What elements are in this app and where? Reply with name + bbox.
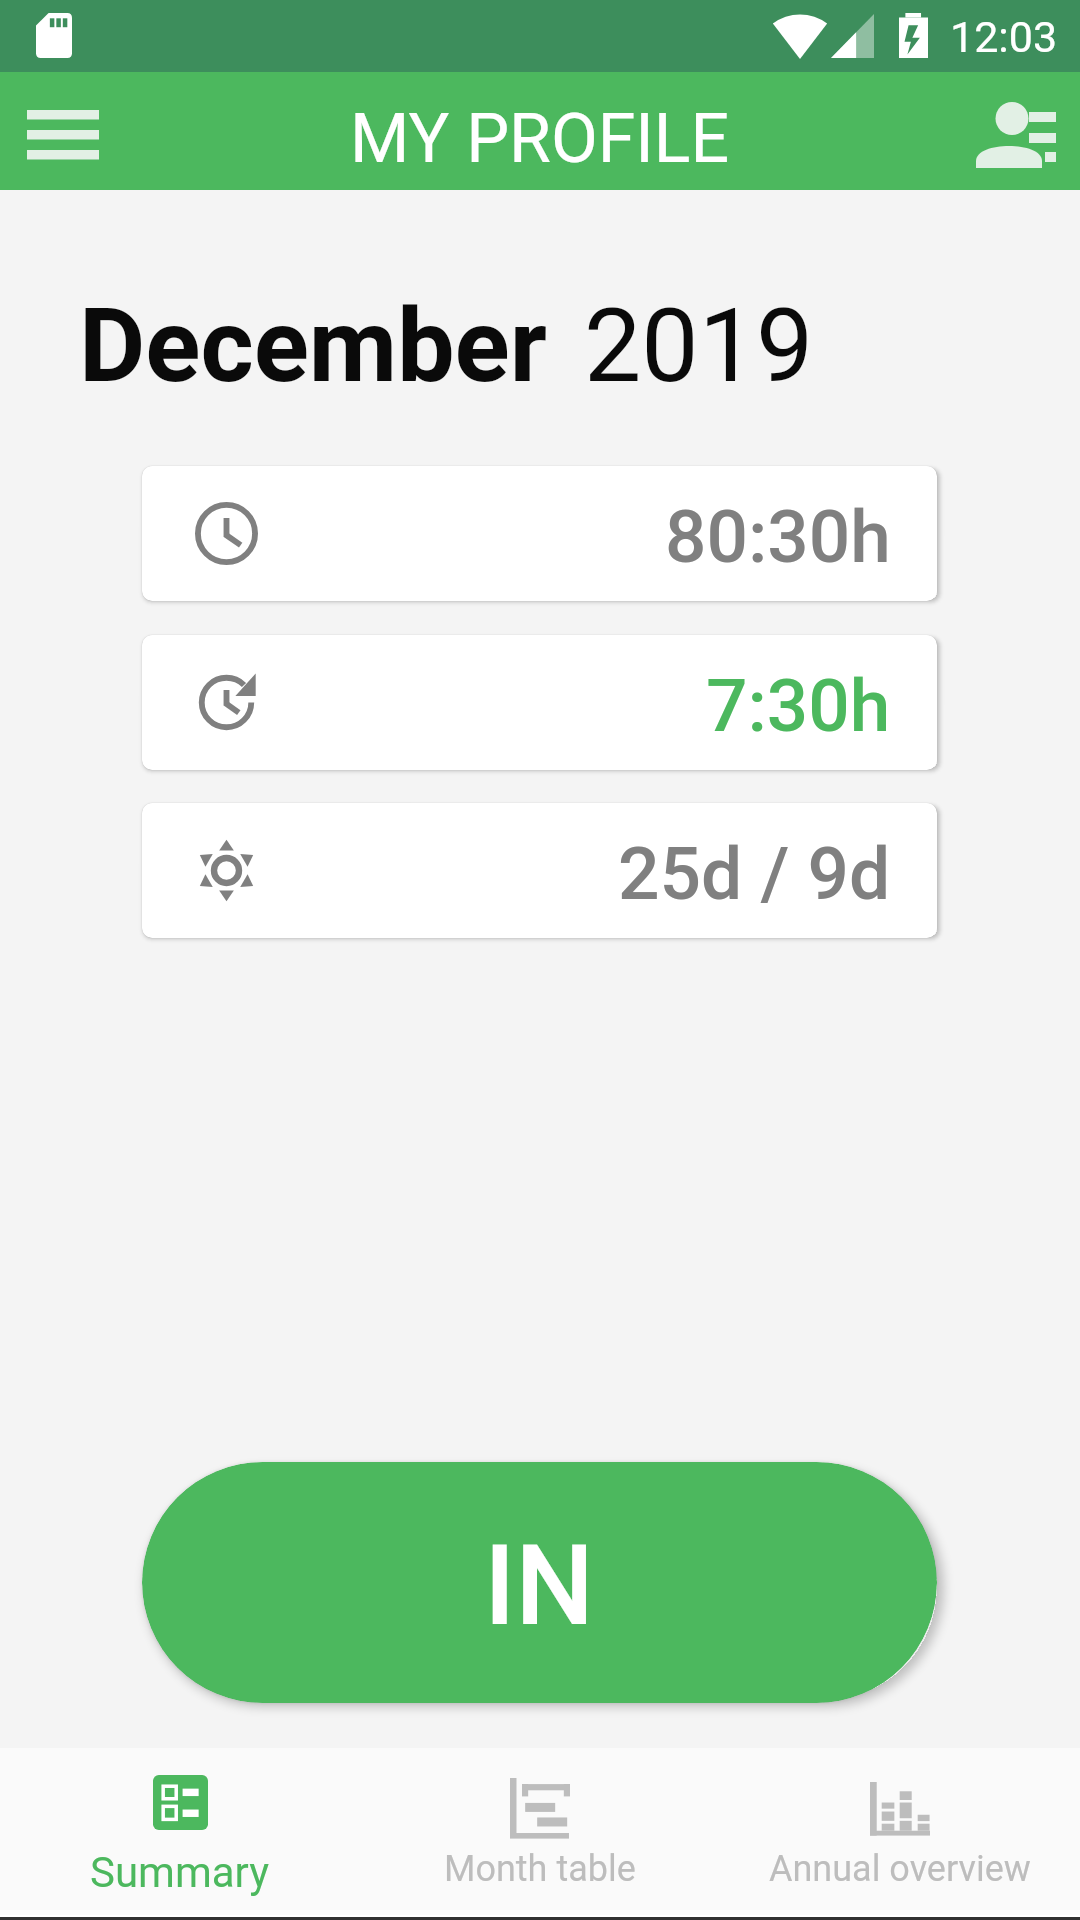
button[interactable]: 25d / 9d	[142, 803, 937, 938]
staticText: 12:03	[950, 12, 1058, 62]
staticText: 2019	[584, 286, 814, 406]
staticText: Month table	[444, 1848, 636, 1890]
button[interactable]: 7:30h	[142, 635, 937, 770]
staticText: December	[79, 286, 547, 406]
button[interactable]: Profile	[962, 72, 1080, 190]
staticText: Annual overview	[769, 1848, 1031, 1890]
staticText: MY PROFILE	[350, 99, 730, 179]
button[interactable]: IN	[142, 1462, 937, 1703]
staticText: 80:30h	[665, 494, 891, 580]
button[interactable]: Month table	[360, 1748, 720, 1915]
button[interactable]: Summary	[0, 1748, 360, 1915]
staticText: Summary	[90, 1848, 270, 1897]
staticText: 25d / 9d	[618, 831, 891, 917]
staticText: IN	[484, 1521, 595, 1651]
button[interactable]: 80:30h	[142, 466, 937, 601]
button[interactable]: Open navigation menu	[0, 72, 126, 190]
staticText: 7:30h	[706, 663, 891, 749]
button[interactable]: Annual overview	[720, 1748, 1080, 1915]
